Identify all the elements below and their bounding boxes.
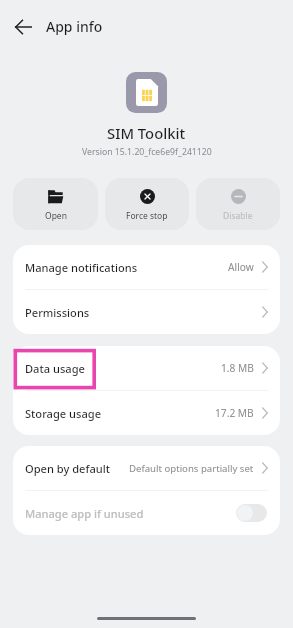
button[interactable]: Data usage	[13, 346, 280, 390]
button[interactable]: Storage usage	[13, 391, 280, 435]
staticText: Version 15.1.20_fce6e9f_241120	[82, 146, 212, 158]
staticText: Storage usage	[25, 406, 102, 421]
button[interactable]: Manage notifications	[13, 245, 280, 289]
staticText: App info	[46, 17, 103, 36]
staticText: Force stop	[126, 210, 168, 222]
button[interactable]: Manage app if unused	[13, 491, 280, 535]
staticText: Disable	[223, 210, 253, 222]
staticText: Allow	[228, 260, 254, 274]
button[interactable]: Disable	[196, 178, 280, 230]
staticText: Open	[45, 210, 67, 222]
staticText: Permissions	[25, 305, 90, 320]
button[interactable]: Open by default	[13, 446, 280, 490]
staticText: Data usage	[25, 361, 85, 376]
staticText: 17.2 MB	[215, 406, 254, 420]
staticText: Default options partially set	[129, 462, 254, 475]
staticText: Open by default	[25, 461, 110, 476]
staticText: Manage app if unused	[25, 506, 144, 521]
button[interactable]: Back	[7, 10, 40, 43]
button[interactable]: Open	[13, 178, 98, 230]
staticText: SIM Toolkit	[107, 123, 186, 143]
button[interactable]: Permissions	[13, 290, 280, 334]
button[interactable]: Force stop	[105, 178, 189, 230]
staticText: 1.8 MB	[221, 361, 254, 375]
staticText: Manage notifications	[25, 260, 138, 275]
